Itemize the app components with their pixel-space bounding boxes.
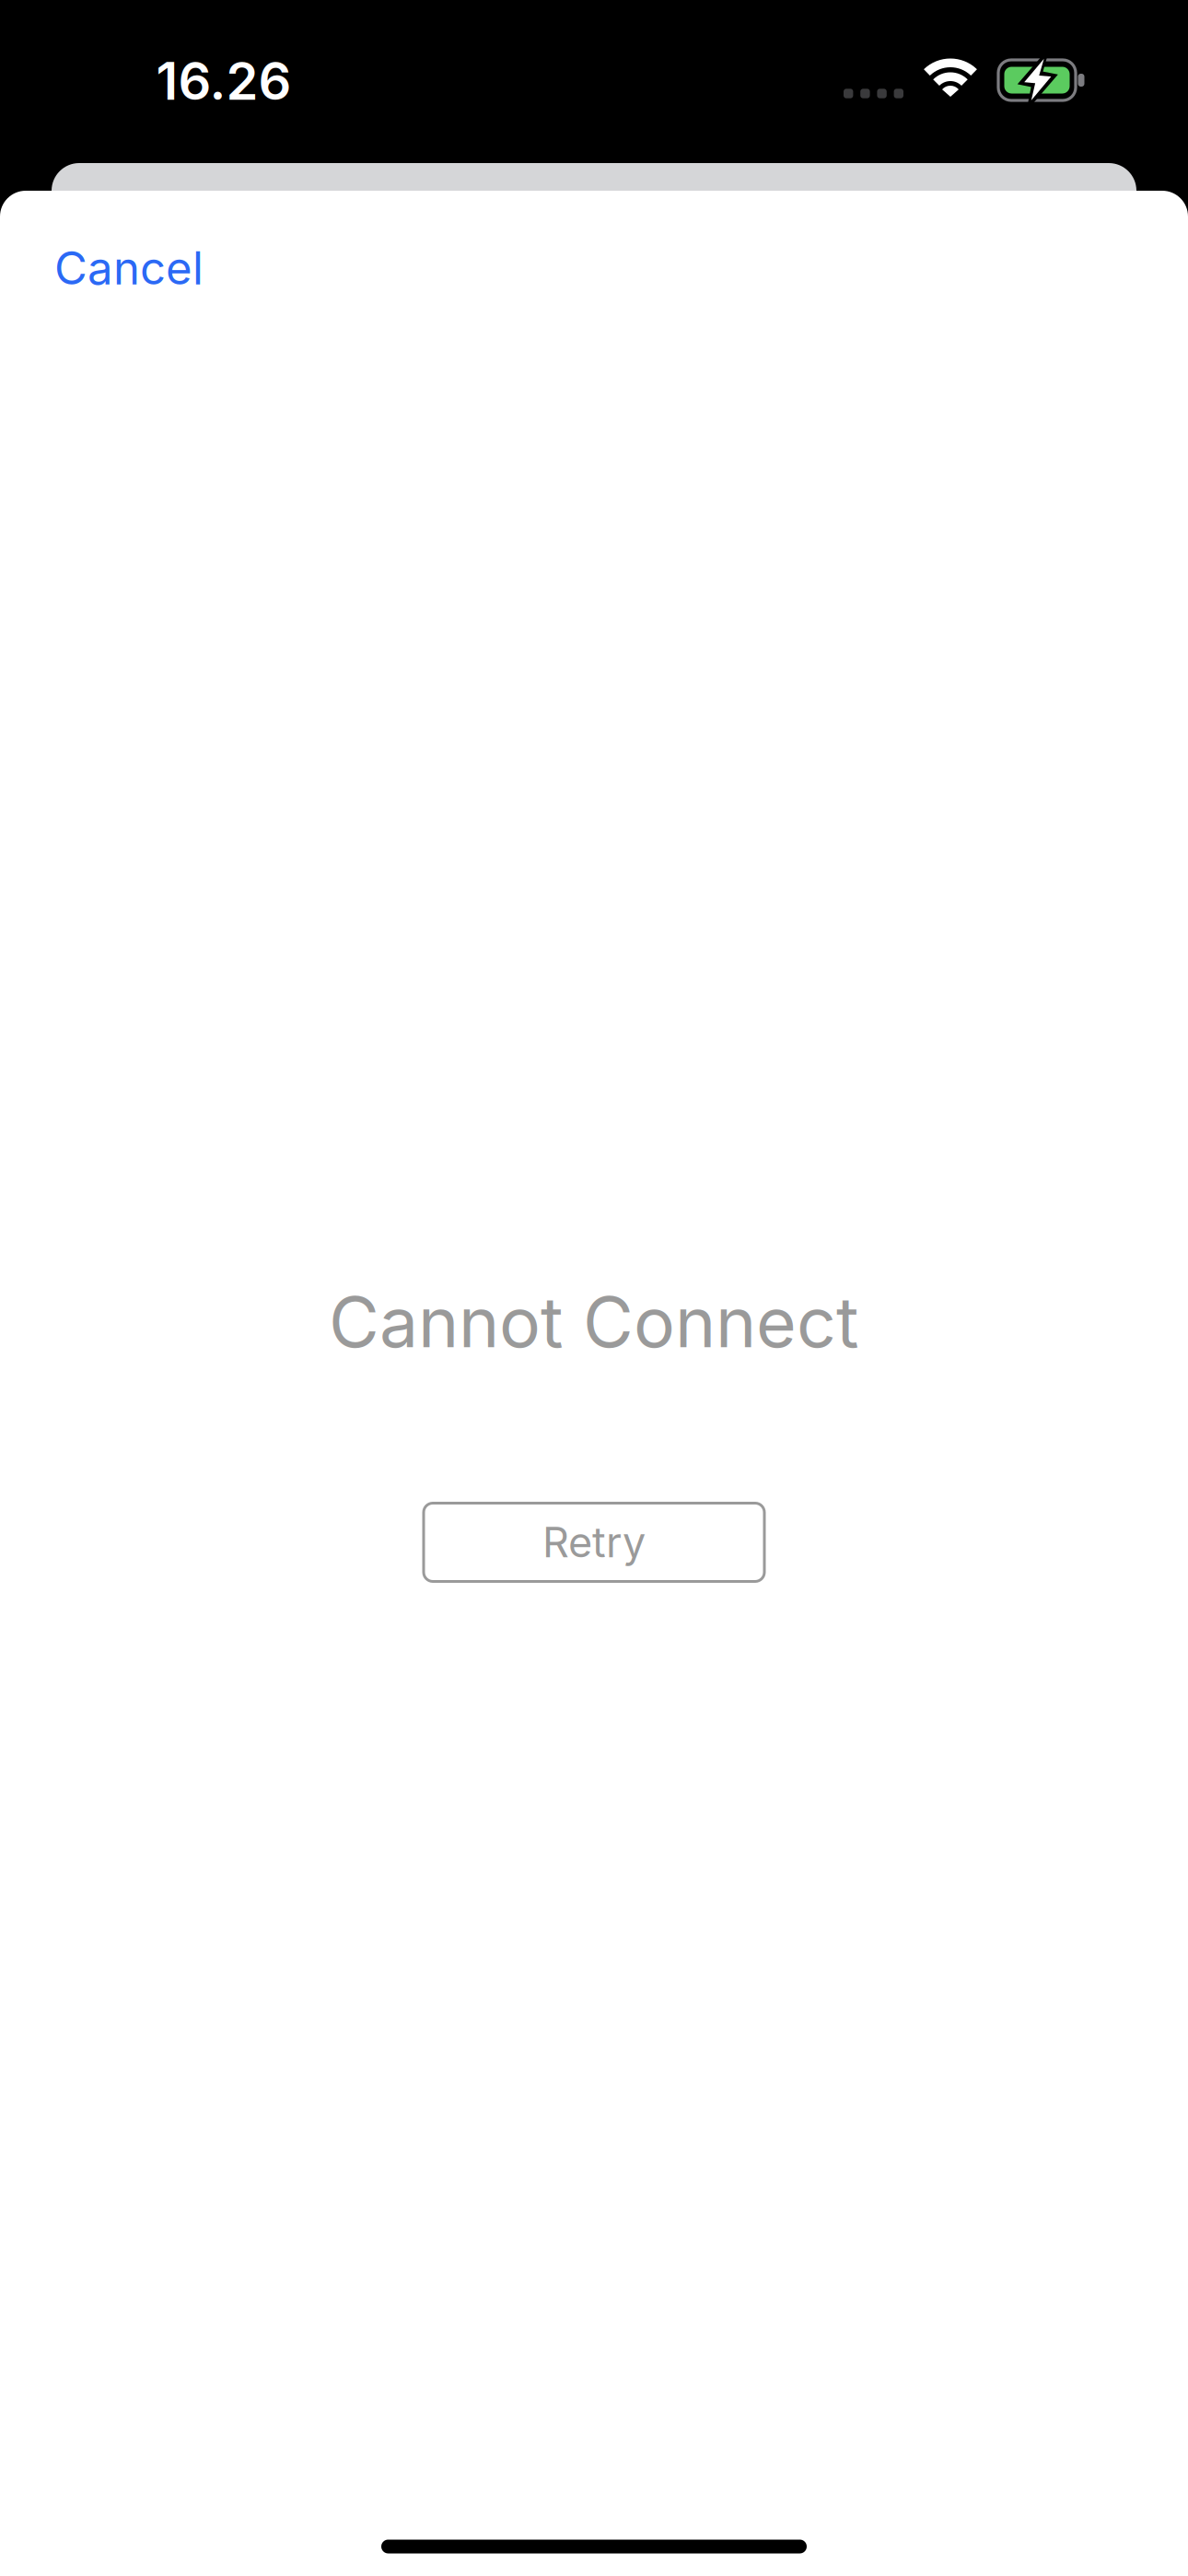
- button[interactable]: Retry: [424, 1503, 764, 1581]
- button[interactable]: Cancel: [54, 222, 257, 314]
- staticText: Cannot Connect: [329, 1280, 859, 1364]
- staticText: Cancel: [54, 241, 204, 295]
- staticText: Retry: [542, 1517, 646, 1567]
- staticText: 16.26: [156, 50, 291, 112]
